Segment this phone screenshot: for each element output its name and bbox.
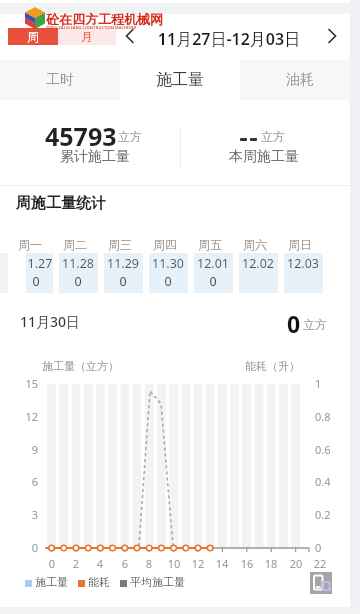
staticText: 22 bbox=[308, 556, 332, 571]
staticText: 0 bbox=[144, 273, 192, 290]
staticText: 砼在四方工程机械网 bbox=[46, 11, 163, 27]
staticText: 0 bbox=[12, 273, 60, 290]
staticText: 6 bbox=[10, 474, 38, 489]
button[interactable]: 油耗 bbox=[240, 60, 360, 100]
staticText: 周六 bbox=[231, 237, 279, 252]
staticText: 本周施工量 bbox=[229, 148, 299, 166]
staticText: 周二 bbox=[51, 237, 99, 252]
button[interactable]: 工时 bbox=[0, 60, 120, 100]
staticText: 0 bbox=[315, 540, 322, 555]
staticText: 14 bbox=[210, 556, 234, 571]
button[interactable] bbox=[324, 28, 340, 44]
staticText: 11.29 bbox=[99, 255, 147, 272]
button[interactable] bbox=[310, 572, 332, 594]
staticText: 11.28 bbox=[54, 255, 102, 272]
button[interactable]: 周 bbox=[8, 28, 58, 45]
staticText: 周五 bbox=[186, 237, 234, 252]
staticText: 11月30日 bbox=[20, 312, 81, 331]
staticText: 0 bbox=[99, 273, 147, 290]
staticText: 周四 bbox=[141, 237, 189, 252]
staticText: 12 bbox=[10, 409, 38, 424]
staticText: 2 bbox=[64, 556, 88, 571]
staticText: 11.30 bbox=[144, 255, 192, 272]
staticText: 施工量（立方） bbox=[42, 359, 119, 373]
staticText: 工时 bbox=[46, 71, 74, 89]
staticText: 18 bbox=[259, 556, 283, 571]
button[interactable] bbox=[149, 253, 188, 293]
staticText: 能耗 bbox=[88, 575, 110, 589]
staticText: 平均施工量 bbox=[130, 575, 185, 589]
staticText: 12.02 bbox=[234, 255, 282, 272]
staticText: 8 bbox=[137, 556, 161, 571]
staticText: 0 bbox=[189, 273, 237, 290]
staticText: 0 bbox=[54, 273, 102, 290]
staticText: 周一 bbox=[6, 237, 54, 252]
staticText: 15 bbox=[10, 376, 38, 391]
button[interactable] bbox=[59, 253, 98, 293]
staticText: 0.4 bbox=[315, 474, 331, 489]
staticText: 0.2 bbox=[315, 507, 331, 522]
button[interactable] bbox=[239, 253, 278, 293]
staticText: 月 bbox=[81, 29, 93, 44]
staticText: 16 bbox=[235, 556, 259, 571]
staticText: 12.01 bbox=[189, 255, 237, 272]
staticText: 0 bbox=[10, 540, 38, 555]
staticText: 施工量 bbox=[35, 575, 68, 589]
staticText: 1 bbox=[315, 376, 322, 391]
staticText: 周日 bbox=[276, 237, 324, 252]
button[interactable] bbox=[104, 253, 143, 293]
staticText: 油耗 bbox=[286, 71, 314, 89]
staticText: 0 bbox=[287, 308, 301, 339]
staticText: 3 bbox=[10, 507, 38, 522]
staticText: 9 bbox=[10, 442, 38, 457]
staticText: 10 bbox=[162, 556, 186, 571]
staticText: 施工量 bbox=[156, 70, 204, 90]
button[interactable] bbox=[284, 253, 323, 293]
staticText: 12.03 bbox=[279, 255, 327, 272]
staticText: 4 bbox=[88, 556, 112, 571]
staticText: 0 bbox=[40, 556, 64, 571]
staticText: TONG ZAI SI FANG CONSTRUCTION MACHINERY … bbox=[46, 25, 136, 30]
staticText: 1.27 bbox=[16, 255, 64, 272]
staticText: 累计施工量 bbox=[60, 148, 130, 166]
button[interactable] bbox=[194, 253, 233, 293]
button[interactable] bbox=[26, 253, 53, 293]
staticText: 45793 bbox=[45, 119, 117, 153]
staticText: 立方 bbox=[118, 129, 142, 144]
staticText: 周三 bbox=[96, 237, 144, 252]
staticText: 周施工量统计 bbox=[16, 194, 106, 213]
staticText: 0.8 bbox=[315, 409, 331, 424]
staticText: 周 bbox=[27, 29, 39, 44]
staticText: 11月27日-12月03日 bbox=[148, 28, 310, 50]
staticText: 12 bbox=[186, 556, 210, 571]
staticText: 能耗（升） bbox=[245, 359, 300, 373]
button[interactable]: 月 bbox=[58, 28, 116, 45]
staticText: 6 bbox=[113, 556, 137, 571]
staticText: 立方 bbox=[261, 129, 285, 144]
button[interactable]: 施工量 bbox=[120, 60, 240, 100]
staticText: 20 bbox=[284, 556, 308, 571]
staticText: 0.6 bbox=[315, 442, 331, 457]
staticText: 立方 bbox=[303, 317, 327, 332]
button[interactable] bbox=[122, 28, 138, 44]
